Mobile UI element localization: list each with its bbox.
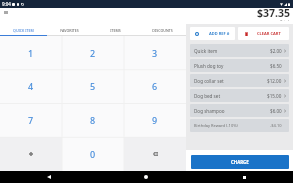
button[interactable]: CLEAR CART <box>238 27 289 40</box>
button[interactable]: CHARGE <box>191 155 289 169</box>
staticText: CHARGE <box>231 159 249 165</box>
button[interactable]: DISCOUNTS <box>139 24 186 36</box>
button[interactable]: Dog shampoo <box>190 104 289 117</box>
button[interactable]: Back <box>44 172 54 182</box>
button[interactable]: ADD REF # <box>190 27 235 40</box>
staticText: 9 <box>152 114 158 126</box>
staticText: Dog collar set <box>194 78 224 84</box>
staticText: $37.35 <box>257 6 290 20</box>
staticText: 4 <box>28 80 34 92</box>
staticText: Dog bed set <box>194 93 221 99</box>
button[interactable]: 4 <box>0 69 62 103</box>
staticText: $6.50 <box>270 63 282 69</box>
button[interactable]: 8 <box>62 103 124 137</box>
other: Add <box>29 152 33 156</box>
button[interactable]: Backspace <box>124 137 186 171</box>
button[interactable]: Plush dog toy <box>190 59 289 72</box>
staticText: Plush dog toy <box>194 63 224 69</box>
staticText: 2 <box>90 47 96 59</box>
staticText: CLEAR CART <box>257 31 281 36</box>
staticText: -$4.10 <box>270 123 282 128</box>
button[interactable]: Dog collar set <box>190 74 289 87</box>
staticText: ITEMS <box>110 28 121 33</box>
button[interactable]: Birthday Reward (-10%) <box>190 119 289 132</box>
button[interactable]: 3 <box>124 36 186 69</box>
staticText: FAVORITES <box>60 28 79 33</box>
button[interactable]: Home <box>141 172 151 182</box>
button[interactable]: QUICK ITEM <box>0 24 46 36</box>
staticText: 7 <box>28 114 34 126</box>
button[interactable]: 0 <box>62 137 124 171</box>
button[interactable]: Add <box>0 137 62 171</box>
staticText: 5 <box>90 80 96 92</box>
button[interactable]: 6 <box>124 69 186 103</box>
staticText: $2.00 <box>270 48 282 54</box>
staticText: ADD REF # <box>209 31 230 36</box>
button[interactable]: 2 <box>62 36 124 69</box>
button[interactable]: FAVORITES <box>46 24 92 36</box>
staticText: Birthday Reward (-10%) <box>194 123 238 128</box>
button[interactable]: ITEMS <box>92 24 139 36</box>
staticText: Dog shampoo <box>194 108 225 114</box>
button[interactable]: 9 <box>124 103 186 137</box>
staticText: Quick item <box>194 48 218 54</box>
staticText: $12.00 <box>267 78 282 84</box>
staticText: Total <box>280 19 290 21</box>
staticText: 6 <box>152 80 158 92</box>
button[interactable]: Dog bed set <box>190 89 289 102</box>
staticText: 1 <box>28 47 34 59</box>
staticText: $15.00 <box>267 93 282 99</box>
button[interactable]: 1 <box>0 36 62 69</box>
button[interactable]: 5 <box>62 69 124 103</box>
staticText: 0 <box>90 148 96 160</box>
button[interactable]: Recent apps <box>239 172 249 182</box>
staticText: 3 <box>152 47 158 59</box>
staticText: 9:04 <box>2 1 11 7</box>
button[interactable]: Open navigation menu <box>0 6 12 18</box>
staticText: $6.00 <box>270 108 282 114</box>
button[interactable]: Quick item <box>190 44 289 57</box>
button[interactable]: 7 <box>0 103 62 137</box>
staticText: DISCOUNTS <box>152 28 173 33</box>
other: Backspace <box>153 152 158 156</box>
staticText: QUICK ITEM <box>13 28 34 33</box>
staticText: 8 <box>90 114 96 126</box>
